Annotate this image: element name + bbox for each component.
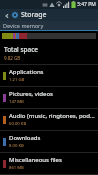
staticText: Total space — [4, 45, 38, 54]
staticText: 1.21 GB — [9, 77, 25, 83]
staticText: Storage — [21, 10, 47, 20]
staticText: 8.00 KB — [9, 143, 24, 149]
staticText: Miscellaneous files — [9, 156, 62, 164]
staticText: 9.82 GB — [4, 55, 21, 61]
staticText: Downloads — [9, 134, 41, 142]
button[interactable]: Pictures, videos — [0, 87, 98, 108]
button[interactable]: Total space — [0, 42, 98, 64]
other: Settings — [11, 11, 19, 19]
staticText: Device memory — [3, 22, 44, 29]
staticText: 3:47 PM — [77, 1, 96, 8]
button[interactable]: Audio (music, ringtones, podca.. — [0, 109, 98, 130]
button[interactable]: Back — [3, 12, 10, 19]
staticText: 147 MB — [9, 99, 24, 105]
staticText: 60.00 KB — [9, 121, 27, 127]
button[interactable]: Applications — [0, 65, 98, 86]
staticText: Applications — [9, 68, 44, 76]
staticText: Pictures, videos — [9, 90, 53, 98]
staticText: 861 MB — [9, 165, 24, 171]
button[interactable]: Back — [0, 9, 98, 21]
button[interactable]: Downloads — [0, 131, 98, 152]
staticText: Audio (music, ringtones, podca.. — [9, 112, 96, 120]
button[interactable]: Miscellaneous files — [0, 153, 98, 174]
